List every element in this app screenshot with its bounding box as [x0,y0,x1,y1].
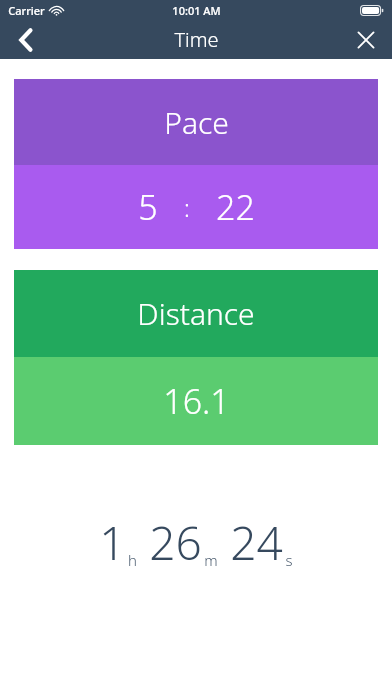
staticText: Distance [137,293,255,334]
staticText: 22 [216,184,255,230]
staticText: 24 [230,511,283,574]
staticText: Time [174,26,219,53]
button[interactable]: Close [340,20,392,59]
staticText: 5 [138,184,158,230]
staticText: m [204,550,218,570]
staticText: 16.1 [163,378,230,424]
staticText: Carrier [8,3,45,18]
staticText: 1 [99,511,126,574]
button[interactable]: Distance [14,270,378,445]
staticText: 26 [149,511,202,574]
staticText: h [128,550,137,570]
staticText: : [184,191,190,224]
staticText: 10:01 AM [172,3,221,18]
staticText: Pace [164,102,229,143]
button[interactable]: Pace [14,79,378,249]
button[interactable]: Back [0,20,52,59]
staticText: s [285,550,293,570]
